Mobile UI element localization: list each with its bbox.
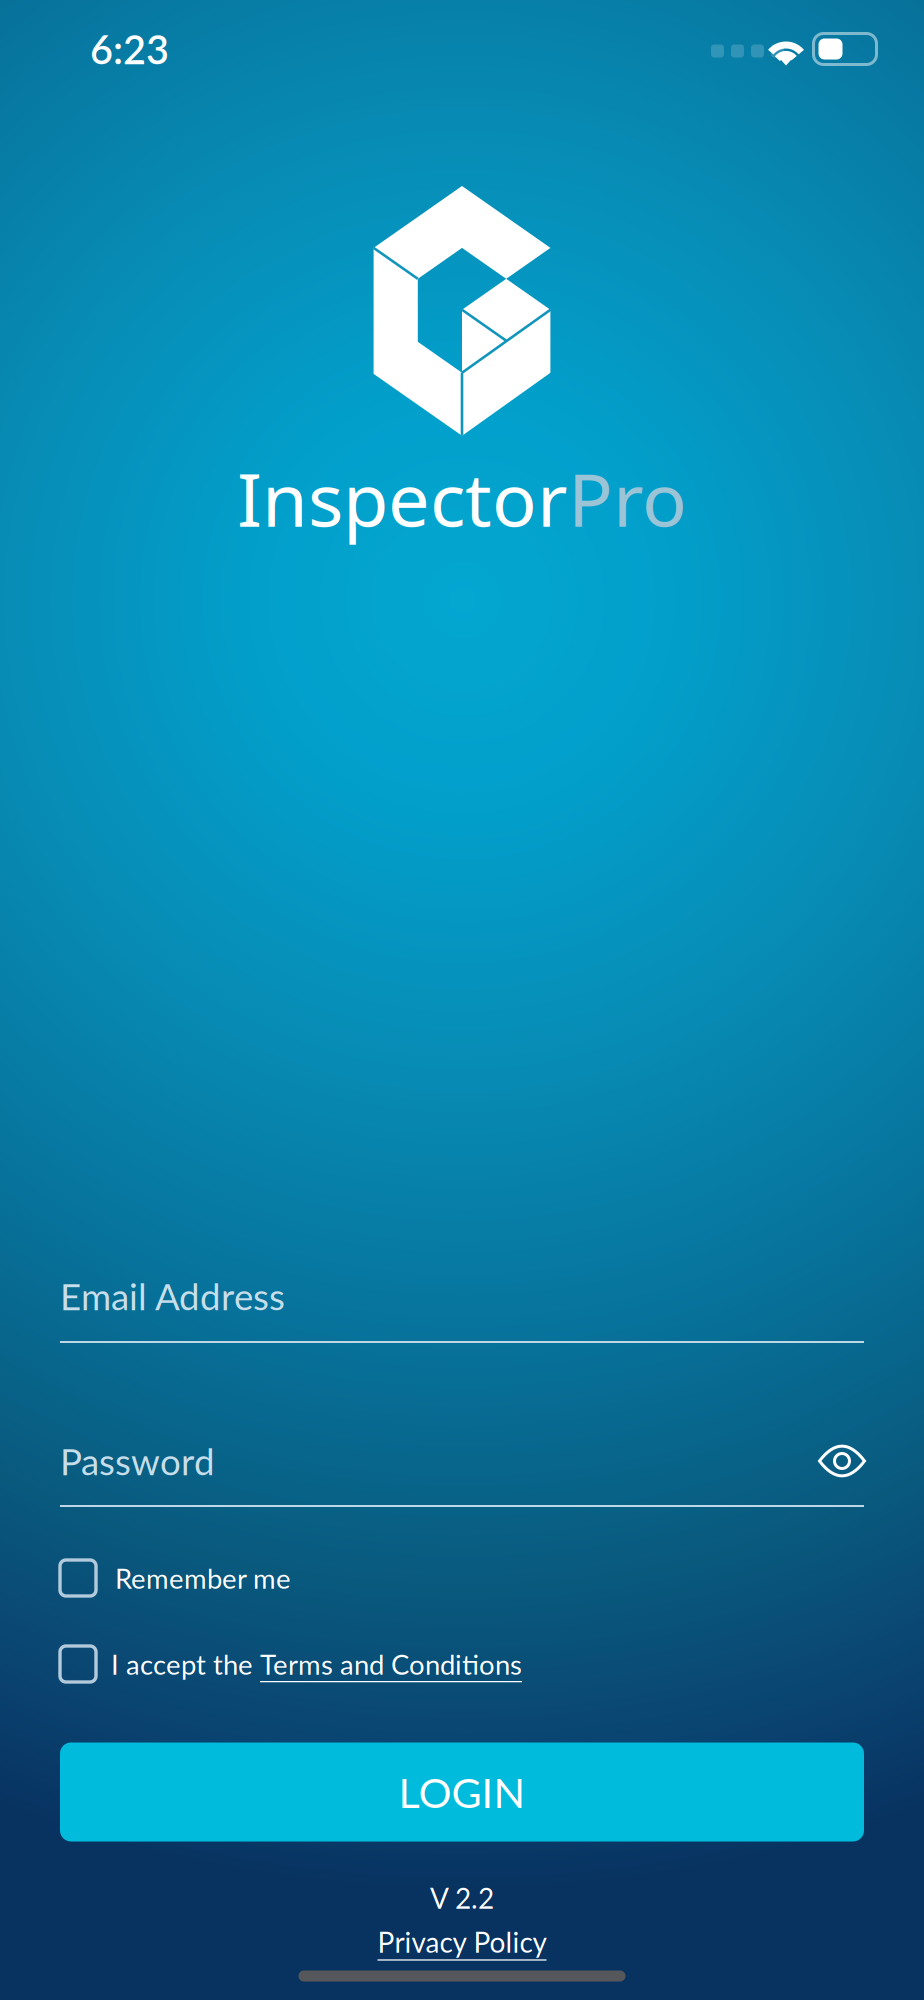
staticText: Email Address bbox=[60, 1274, 285, 1318]
staticText: I accept the bbox=[111, 1647, 260, 1680]
button[interactable]: Privacy Policy bbox=[332, 1919, 592, 1965]
button[interactable]: LOGIN bbox=[60, 1742, 864, 1841]
staticText: Privacy Policy bbox=[377, 1925, 546, 1959]
staticText: LOGIN bbox=[398, 1767, 525, 1817]
button[interactable]: Show password bbox=[809, 1433, 875, 1489]
staticText: 6:23 bbox=[90, 25, 169, 73]
button[interactable]: I accept the bbox=[60, 1636, 864, 1692]
staticText: Terms and Conditions bbox=[260, 1647, 522, 1680]
staticText: Pro bbox=[568, 448, 687, 548]
staticText: Inspector bbox=[237, 448, 568, 548]
button[interactable]: Remember me bbox=[60, 1550, 864, 1606]
staticText: Password bbox=[60, 1439, 215, 1483]
staticText: Remember me bbox=[115, 1561, 291, 1594]
staticText: V 2.2 bbox=[430, 1881, 494, 1915]
